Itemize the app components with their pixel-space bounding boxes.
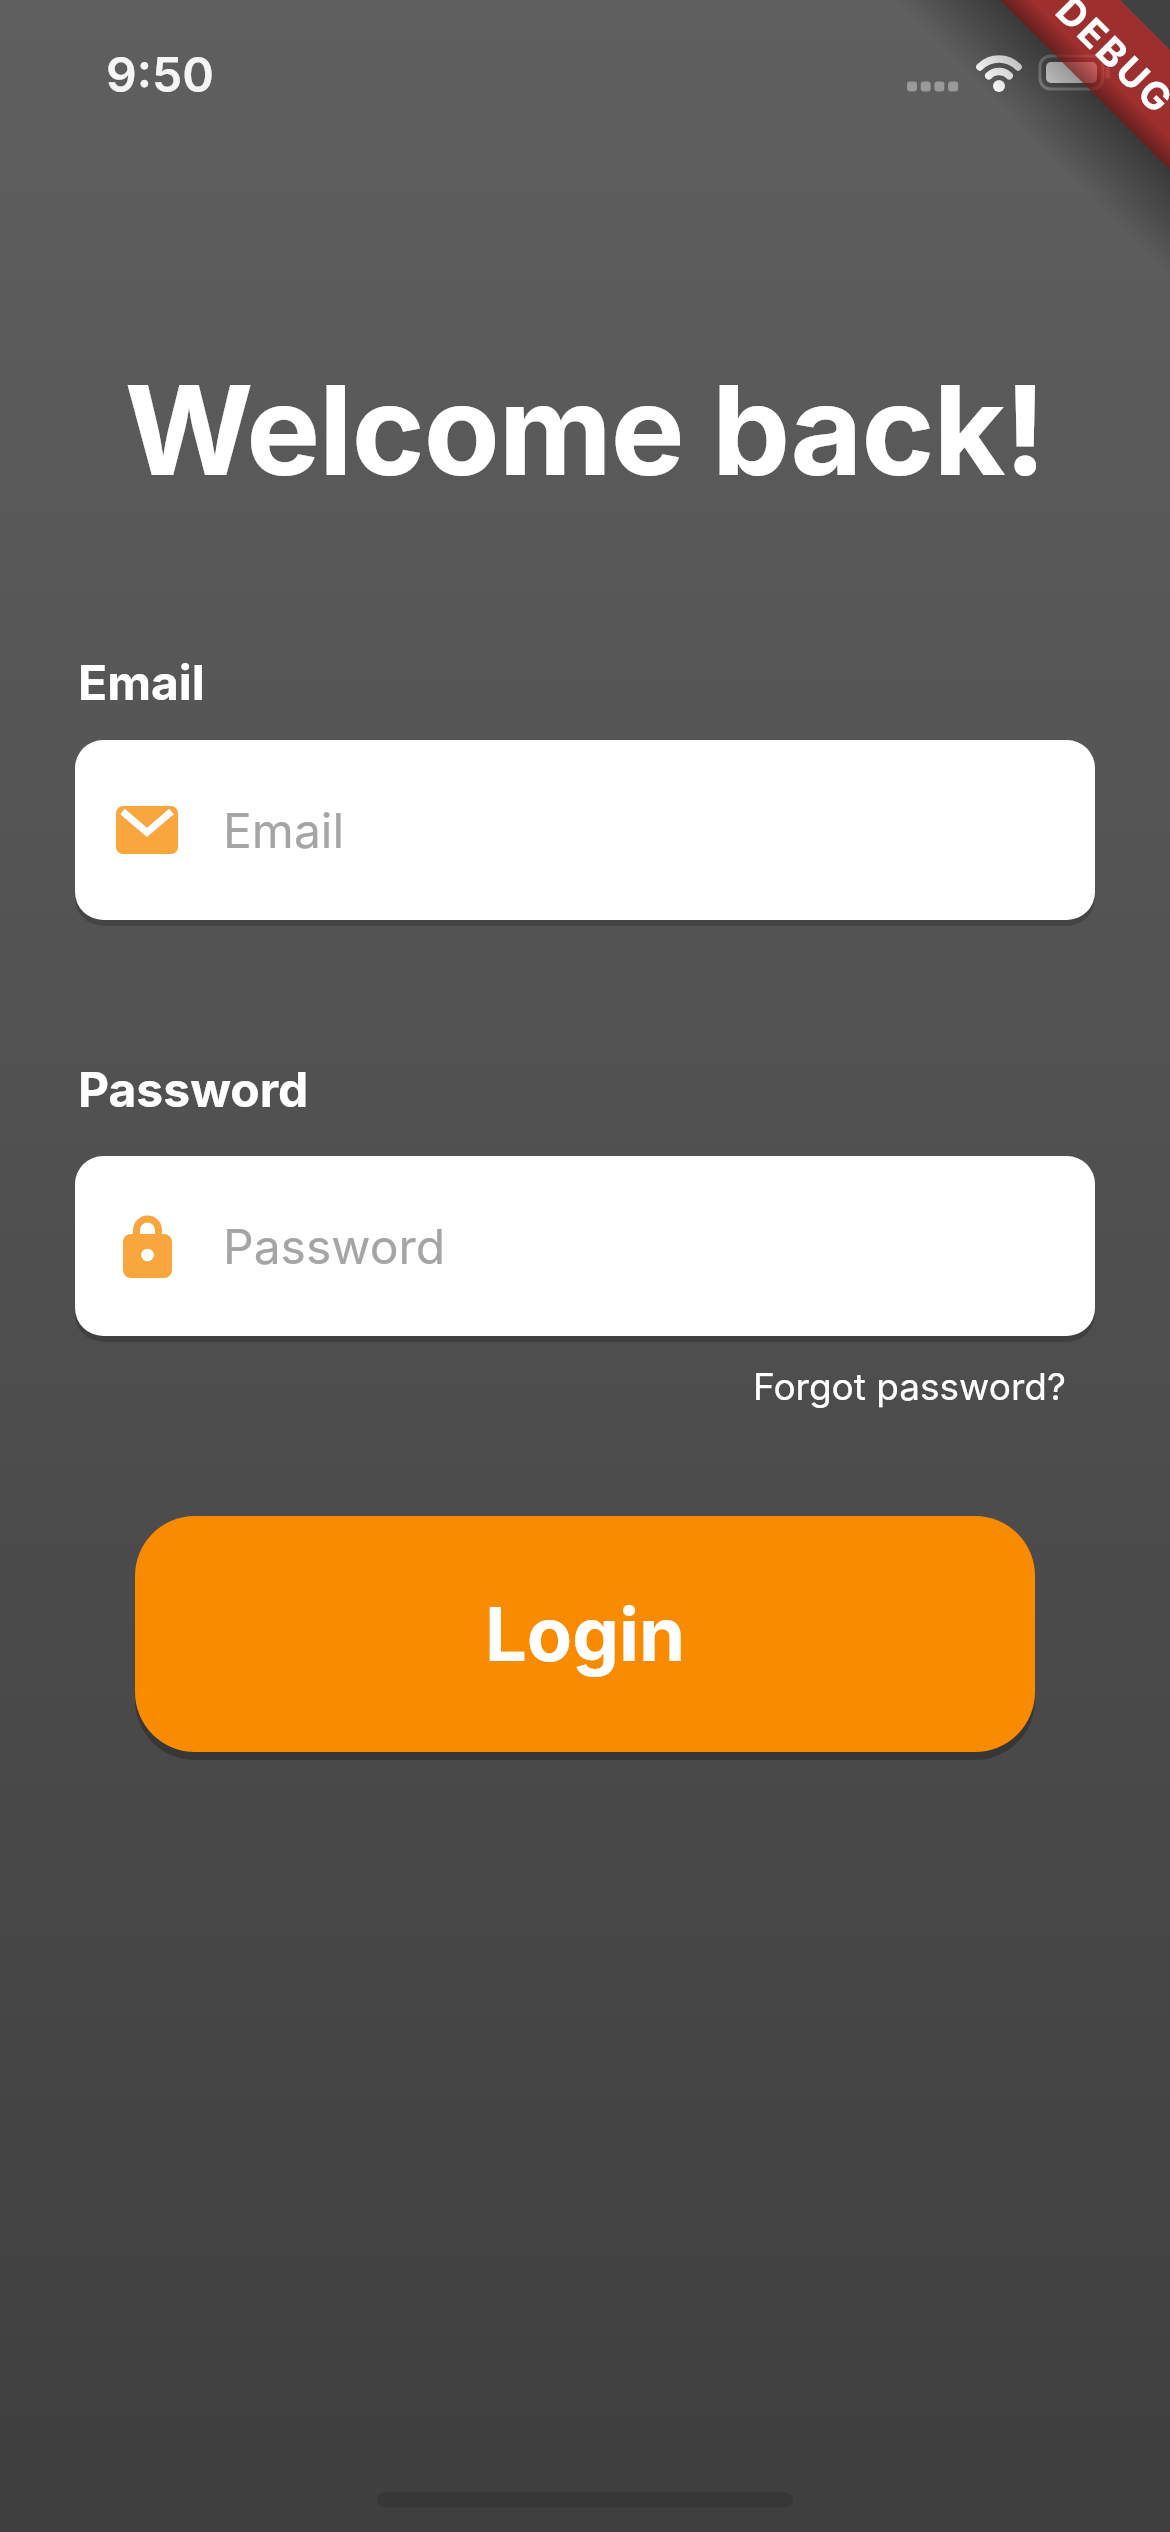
staticText: Email <box>223 801 345 859</box>
button[interactable]: Password <box>75 1156 1095 1336</box>
staticText: Email <box>78 653 205 711</box>
staticText: Forgot password? <box>753 1364 1066 1409</box>
staticText: Login <box>485 1589 686 1679</box>
staticText: DEBUG <box>1047 0 1170 124</box>
button[interactable]: Login <box>135 1516 1035 1752</box>
button[interactable]: Email <box>75 740 1095 920</box>
staticText: Password <box>78 1060 309 1118</box>
staticText: Password <box>223 1217 446 1275</box>
staticText: Welcome back! <box>0 355 1170 505</box>
staticText: 9:50 <box>106 45 214 103</box>
button[interactable]: Forgot password? <box>753 1364 1066 1409</box>
